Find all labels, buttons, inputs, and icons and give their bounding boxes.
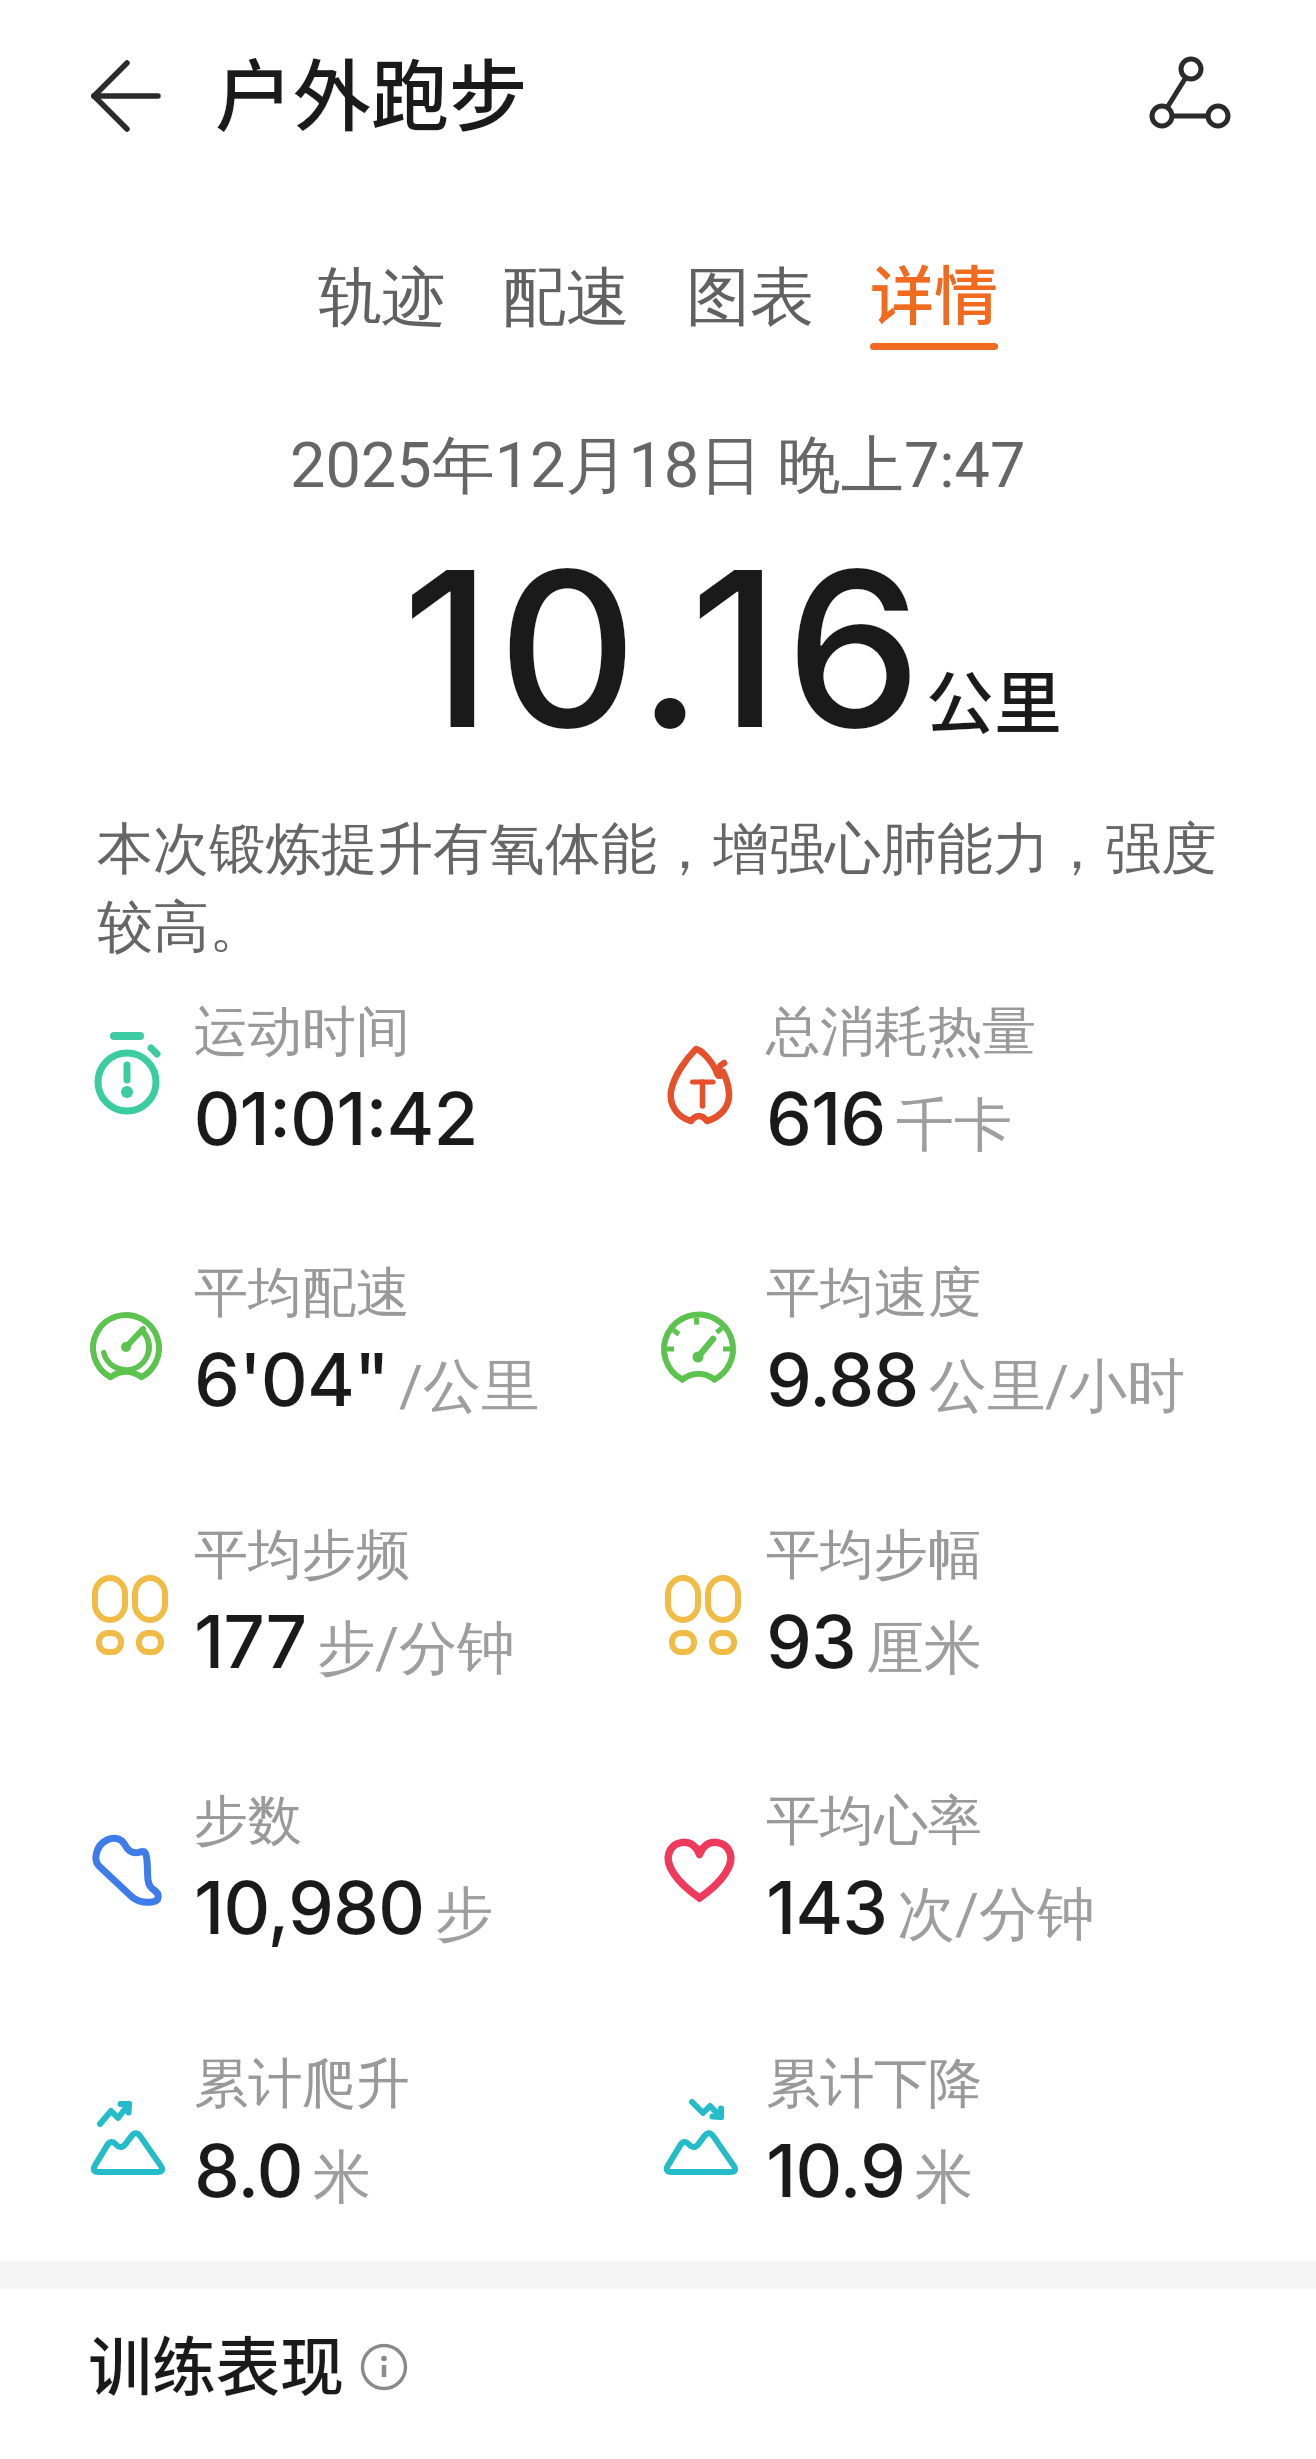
staticText: 户外跑步	[215, 35, 528, 148]
staticText: 平均心率	[766, 1787, 982, 1855]
staticText: 公里	[926, 649, 1063, 747]
staticText: 步数	[194, 1787, 302, 1855]
button[interactable]: 配速	[502, 257, 630, 350]
staticText: 177	[194, 1597, 307, 1685]
staticText: 6'04"	[194, 1335, 389, 1423]
staticText: 143	[766, 1863, 887, 1951]
staticText: 米	[313, 2141, 371, 2214]
staticText: 平均配速	[194, 1259, 410, 1327]
staticText: 运动时间	[194, 998, 410, 1066]
staticText: 步	[435, 1878, 493, 1951]
staticText: 平均步幅	[766, 1521, 982, 1589]
staticText: 公里/小时	[929, 1350, 1185, 1423]
staticText: 千卡	[896, 1089, 1012, 1162]
staticText: 步/分钟	[317, 1612, 515, 1685]
staticText: 8.0	[194, 2126, 303, 2214]
staticText: 图表	[686, 257, 814, 338]
staticText: 次/分钟	[897, 1878, 1095, 1951]
staticText: 厘米	[866, 1612, 982, 1685]
staticText: 93	[766, 1597, 856, 1685]
button[interactable]	[360, 2342, 408, 2390]
button[interactable]	[1136, 44, 1244, 152]
staticText: 累计爬升	[194, 2050, 410, 2118]
staticText: 616	[766, 1074, 886, 1162]
button[interactable]	[76, 46, 176, 146]
staticText: 01:01:42	[194, 1074, 478, 1162]
staticText: 配速	[502, 257, 630, 338]
staticText: 10,980	[194, 1863, 425, 1951]
staticText: 平均速度	[766, 1259, 982, 1327]
staticText: 总消耗热量	[766, 998, 1036, 1066]
staticText: 轨迹	[318, 257, 446, 338]
button[interactable]: 详情	[870, 257, 998, 362]
button[interactable]: 训练表现	[88, 2316, 344, 2409]
staticText: 米	[915, 2141, 973, 2214]
staticText: 10.16	[402, 518, 928, 779]
staticText: 本次锻炼提升有氧体能，增强心肺能力，强度 较高。	[97, 814, 1217, 963]
staticText: 平均步频	[194, 1521, 410, 1589]
staticText: 训练表现	[88, 2316, 344, 2409]
staticText: /公里	[399, 1350, 539, 1423]
staticText: 10.9	[766, 2126, 905, 2214]
staticText: 2025年12月18日 晚上7:47	[290, 426, 1026, 505]
staticText: 9.88	[766, 1335, 919, 1423]
staticText: 详情	[870, 245, 998, 338]
staticText: 累计下降	[766, 2050, 982, 2118]
button[interactable]: 轨迹	[318, 257, 446, 350]
button[interactable]: 图表	[686, 257, 814, 350]
